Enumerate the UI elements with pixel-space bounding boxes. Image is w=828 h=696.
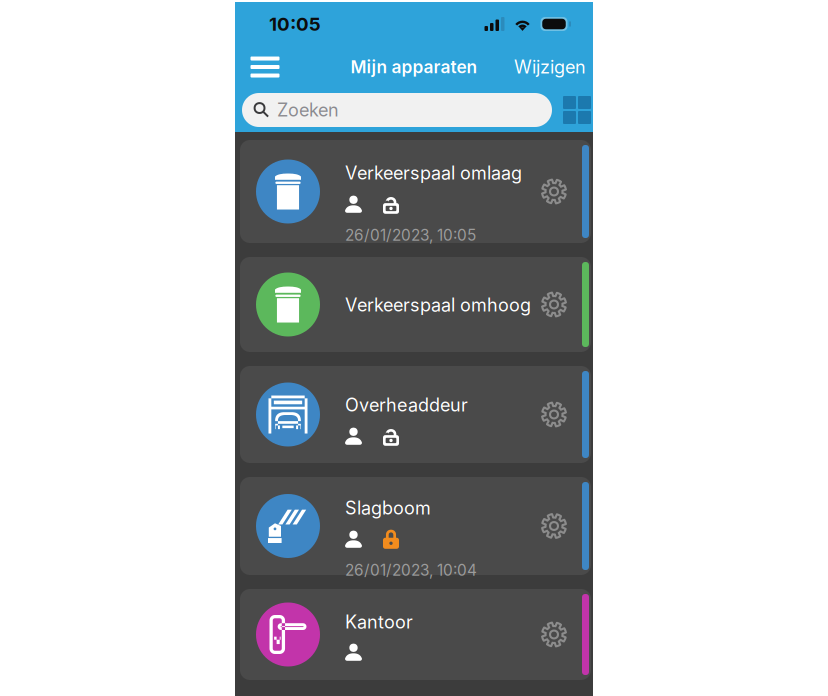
staticText: Kantoor (345, 611, 413, 633)
button[interactable]: Verkeerspaal omhoog (240, 257, 591, 352)
staticText: 26/01/2023, 10:05 (345, 226, 476, 244)
staticText: 10:05 (269, 13, 321, 35)
button[interactable]: Menu (243, 50, 287, 84)
button[interactable]: Kantoor (240, 589, 591, 680)
staticText: Slagboom (345, 497, 431, 519)
button[interactable]: Overheaddeur (240, 366, 591, 463)
staticText: Mijn apparaten (350, 56, 477, 77)
staticText: Verkeerspaal omlaag (345, 162, 522, 184)
button[interactable]: Wijzigen (514, 56, 586, 78)
staticText: 26/01/2023, 10:04 (345, 561, 477, 579)
button[interactable]: Verkeerspaal omlaag (240, 140, 591, 243)
button[interactable]: Slagboom (240, 477, 591, 575)
staticText: Verkeerspaal omhoog (345, 294, 531, 316)
staticText: Zoeken (277, 99, 339, 121)
staticText: Overheaddeur (345, 394, 468, 416)
staticText: Wijzigen (514, 56, 586, 78)
button[interactable]: Grid view (552, 96, 593, 124)
